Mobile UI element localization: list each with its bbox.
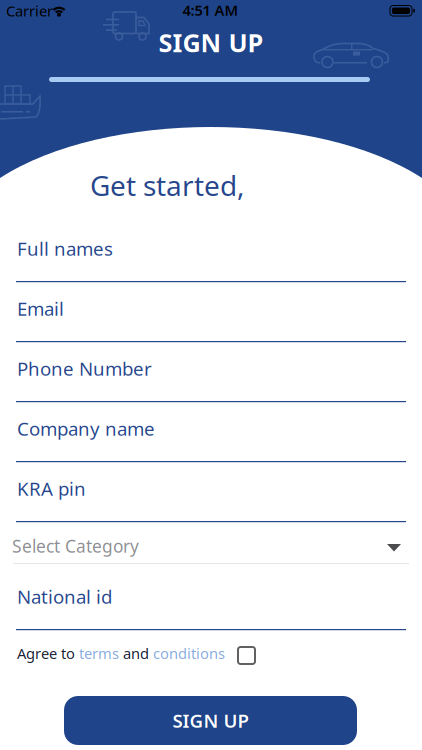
button[interactable]: Phone Number <box>16 356 406 402</box>
button[interactable]: Full names <box>16 236 406 282</box>
button[interactable]: KRA pin <box>16 476 406 522</box>
staticText: and <box>119 643 153 663</box>
button[interactable]: conditions <box>153 643 225 663</box>
staticText: National id <box>17 584 112 609</box>
button[interactable]: Company name <box>16 416 406 462</box>
button[interactable]: National id <box>16 584 406 630</box>
button[interactable]: Email <box>16 296 406 342</box>
staticText: SIGN UP <box>172 708 248 733</box>
staticText: Company name <box>17 416 155 441</box>
staticText: Carrier <box>6 1 53 20</box>
staticText: Full names <box>17 236 113 261</box>
staticText: conditions <box>153 643 225 663</box>
staticText: SIGN UP <box>158 26 263 59</box>
staticText: Agree to <box>17 643 79 663</box>
staticText: terms <box>79 643 119 663</box>
button[interactable]: SIGN UP <box>64 696 357 745</box>
staticText: Select Category <box>12 534 139 557</box>
staticText: 4:51 AM <box>182 0 238 20</box>
staticText: Phone Number <box>17 356 152 381</box>
button[interactable]: Select Category <box>12 534 409 564</box>
staticText: Get started, <box>90 166 245 204</box>
staticText: Email <box>17 296 64 321</box>
button[interactable]: terms <box>79 643 119 663</box>
button[interactable]: Agree to terms and conditions <box>238 647 255 664</box>
staticText: KRA pin <box>17 476 86 501</box>
